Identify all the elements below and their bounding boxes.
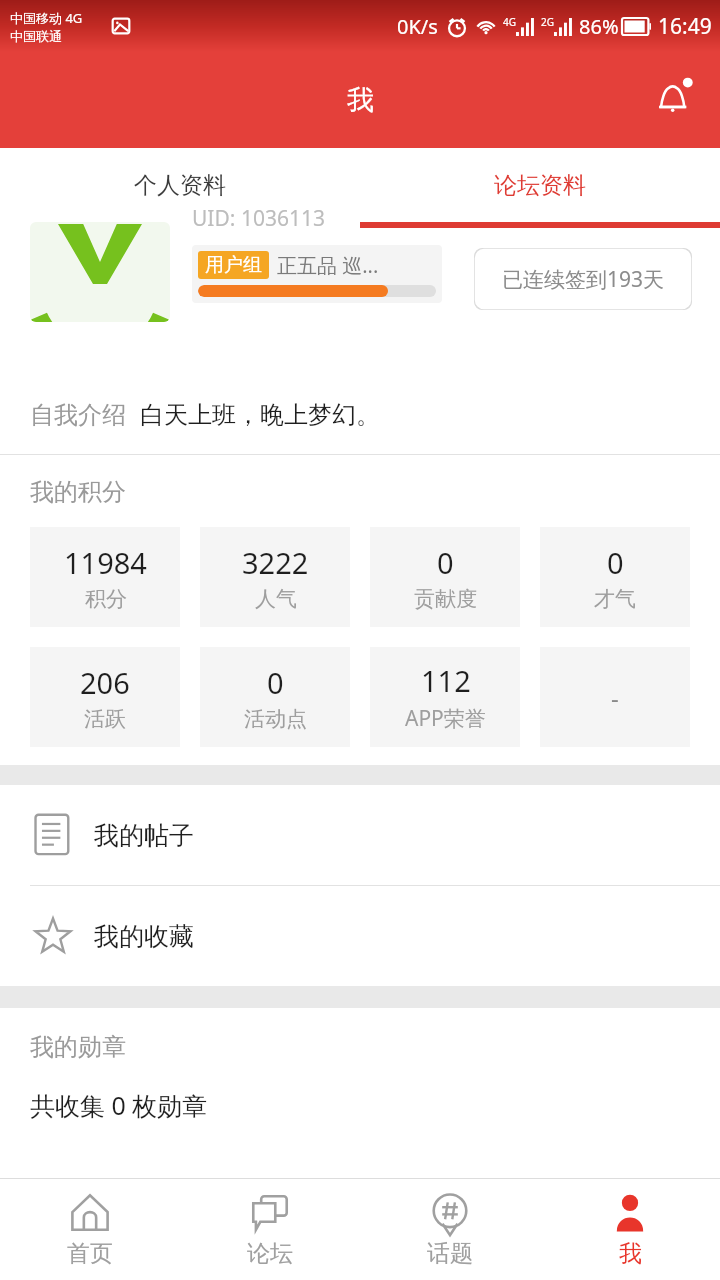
staticText: 论坛 <box>247 1239 293 1268</box>
button[interactable]: 206 <box>30 647 180 747</box>
staticText: 贡献度 <box>414 586 477 612</box>
staticText: 论坛资料 <box>494 171 586 200</box>
staticText: 4G <box>503 15 516 29</box>
staticText: 共收集 0 枚勋章 <box>30 1088 208 1122</box>
staticText: 用户组 <box>205 253 262 277</box>
button[interactable]: 112 <box>370 647 520 747</box>
staticText: 才气 <box>594 586 636 612</box>
staticText: 16:49 <box>658 12 712 41</box>
button[interactable]: 11984 <box>30 527 180 627</box>
staticText: 我的积分 <box>30 477 126 507</box>
button[interactable]: Notifications <box>646 71 704 129</box>
staticText: 0K/s <box>397 13 438 40</box>
staticText: 中国移动 4G <box>10 9 83 27</box>
staticText: 86% <box>579 13 619 40</box>
button[interactable]: 论坛 <box>180 1179 360 1280</box>
staticText: 0 <box>437 543 454 582</box>
staticText: - <box>611 681 619 714</box>
staticText: UID: 1036113 <box>192 204 325 233</box>
staticText: 0 <box>267 663 284 702</box>
staticText: 112 <box>421 661 471 700</box>
button[interactable]: 我的收藏 <box>0 886 720 986</box>
staticText: 活跃 <box>84 706 126 732</box>
staticText: 已连续签到193天 <box>502 265 665 294</box>
button[interactable]: 0 <box>200 647 350 747</box>
staticText: 正五品 巡... <box>277 252 379 279</box>
staticText: 0 <box>607 543 624 582</box>
staticText: 自我介绍 <box>30 400 126 430</box>
staticText: 我 <box>347 83 374 117</box>
button[interactable]: 我 <box>540 1179 720 1280</box>
staticText: 人气 <box>255 586 297 612</box>
button[interactable]: 论坛资料 <box>360 148 720 222</box>
staticText: 话题 <box>427 1239 473 1268</box>
button[interactable]: 话题 <box>360 1179 540 1280</box>
staticText: 11984 <box>64 543 147 582</box>
staticText: 我的勋章 <box>30 1032 126 1062</box>
button[interactable]: 首页 <box>0 1179 180 1280</box>
staticText: 白天上班，晚上梦幻。 <box>140 400 380 430</box>
button[interactable]: 我的帖子 <box>0 785 720 885</box>
button[interactable]: 0 <box>540 527 690 627</box>
staticText: APP荣誉 <box>405 704 486 733</box>
button[interactable]: 已连续签到193天 <box>474 248 692 310</box>
staticText: 我的帖子 <box>94 820 194 851</box>
staticText: 我的收藏 <box>94 921 194 952</box>
button[interactable]: Avatar <box>30 222 170 322</box>
button[interactable]: 0 <box>370 527 520 627</box>
staticText: 个人资料 <box>134 171 226 200</box>
staticText: 我 <box>619 1239 642 1268</box>
staticText: 206 <box>80 663 130 702</box>
staticText: 3222 <box>242 543 309 582</box>
staticText: 2G <box>541 15 554 29</box>
staticText: 活动点 <box>244 706 307 732</box>
staticText: 首页 <box>67 1239 113 1268</box>
staticText: 中国联通 <box>10 28 62 44</box>
staticText: 积分 <box>85 586 127 612</box>
button[interactable]: 3222 <box>200 527 350 627</box>
button[interactable]: 个人资料 <box>0 148 360 222</box>
